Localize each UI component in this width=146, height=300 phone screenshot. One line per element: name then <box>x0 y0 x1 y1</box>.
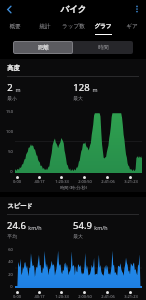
staticText: 60 <box>8 247 13 252</box>
button[interactable]: ラップ数 <box>59 18 88 37</box>
staticText: 最小 <box>7 95 17 101</box>
staticText: 距離 <box>38 44 49 51</box>
staticText: 0 <box>10 169 13 174</box>
button[interactable]: メニュー <box>128 0 146 18</box>
staticText: 2:00:50 <box>78 294 92 299</box>
button[interactable]: 統計 <box>30 18 59 37</box>
staticText: 24.6 <box>7 219 26 232</box>
staticText: m <box>15 86 21 93</box>
staticText: 0 <box>10 284 13 289</box>
staticText: 2 <box>7 81 13 94</box>
staticText: 20 <box>8 272 13 277</box>
staticText: 3:21:23 <box>124 179 138 184</box>
staticText: 最大 <box>73 95 83 101</box>
staticText: 最大 <box>73 233 83 239</box>
staticText: 2:41:06 <box>101 179 115 184</box>
staticText: 40:17 <box>34 179 45 184</box>
staticText: グラフ <box>94 23 112 30</box>
staticText: 1:20:33 <box>55 179 69 184</box>
staticText: スピード <box>7 202 33 210</box>
staticText: 54.9 <box>73 219 92 232</box>
staticText: 概要 <box>9 23 21 30</box>
button[interactable]: 時間 <box>73 41 133 54</box>
staticText: 平均 <box>7 233 17 239</box>
staticText: 高度 <box>7 64 20 72</box>
staticText: 128 <box>73 81 90 94</box>
staticText: 3:21:23 <box>124 294 138 299</box>
staticText: 40:17 <box>34 294 45 299</box>
staticText: ギア <box>126 23 138 30</box>
staticText: 2:00:50 <box>78 179 92 184</box>
staticText: 150 <box>6 109 13 114</box>
staticText: 時間 (時:分:秒) <box>60 185 87 191</box>
button[interactable]: 距離 <box>13 41 73 54</box>
staticText: 100 <box>6 129 13 134</box>
staticText: km/h <box>94 224 108 231</box>
staticText: バイク <box>60 4 87 15</box>
staticText: 2:41:06 <box>101 294 115 299</box>
staticText: 40 <box>8 259 13 264</box>
staticText: m <box>92 86 98 93</box>
button[interactable]: 戻る <box>0 0 18 18</box>
staticText: 統計 <box>39 23 51 30</box>
staticText: 時間 <box>98 44 109 51</box>
button[interactable]: ギア <box>117 18 146 37</box>
staticText: km/h <box>28 224 42 231</box>
button[interactable]: 概要 <box>0 18 30 37</box>
button[interactable]: グラフ <box>88 18 117 37</box>
staticText: 1:20:33 <box>55 294 69 299</box>
staticText: 0:00 <box>13 294 21 299</box>
staticText: 0:00 <box>13 179 21 184</box>
staticText: ラップ数 <box>62 23 85 30</box>
staticText: 50 <box>8 149 13 154</box>
